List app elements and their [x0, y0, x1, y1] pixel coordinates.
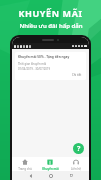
other: Back — [29, 174, 33, 178]
staticText: Liên hệ — [71, 167, 81, 171]
button[interactable]: Khuyến mãi — [37, 157, 63, 171]
staticText: 01/04/2019 - 30/07/2019 — [18, 67, 51, 71]
other: Home — [49, 174, 53, 178]
button[interactable]: Khuyến mãi 50% - Tặng tiền ngay — [15, 52, 86, 80]
other: Recents — [70, 174, 73, 177]
staticText: Chi tiết — [72, 73, 82, 77]
staticText: Khuyến mãi — [42, 167, 59, 171]
staticText: ? — [77, 144, 81, 154]
staticText: KHUYẾN MÃI — [18, 7, 83, 19]
staticText: Khuyến mãi 50% - Tặng tiền ngay — [18, 55, 70, 59]
button[interactable]: Liên hệ — [63, 157, 89, 171]
staticText: Nhiều ưu đãi hấp dẫn — [19, 22, 83, 30]
button[interactable]: Trang chủ — [12, 157, 37, 171]
button[interactable]: Trợ giúp — [73, 143, 84, 154]
staticText: Trang chủ — [18, 167, 32, 171]
staticText: Thời gian khuyến mãi — [18, 62, 47, 66]
button[interactable]: Chi tiết — [71, 73, 83, 77]
